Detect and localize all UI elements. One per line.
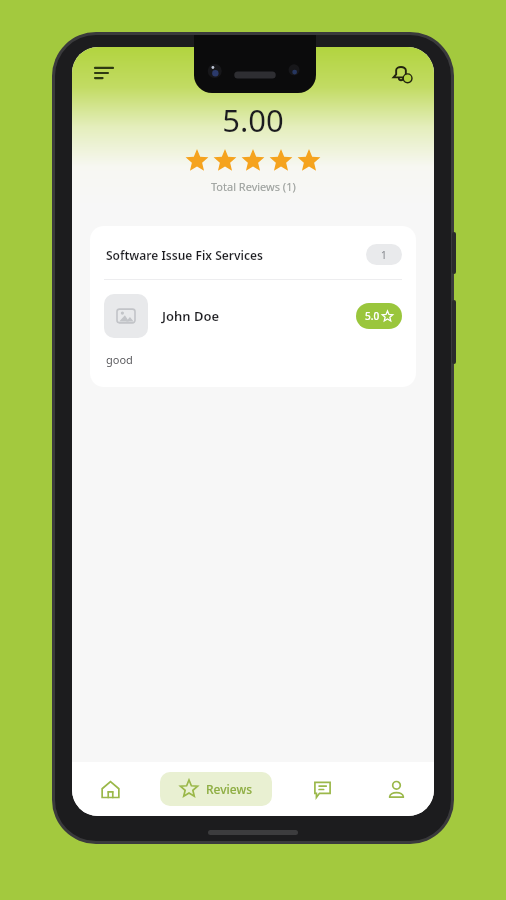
button[interactable]: Reviews [160,772,272,806]
button[interactable]: Software Issue Fix Services [90,226,416,387]
button[interactable]: Menu [88,57,120,89]
staticText: John Doe [162,307,356,325]
staticText: Reviews [206,781,252,797]
button[interactable]: Home [86,769,134,809]
staticText: good [106,352,133,367]
staticText: 5.0 [365,309,380,323]
button[interactable]: Profile [372,769,420,809]
staticText: 1 [381,248,387,262]
button[interactable]: 5.0 [356,303,402,329]
button[interactable]: Notifications [384,56,418,90]
staticText: 5.00 [222,99,284,141]
staticText: Software Issue Fix Services [106,247,366,263]
staticText: Total Reviews (1) [211,179,296,194]
button[interactable]: Messages [298,769,346,809]
